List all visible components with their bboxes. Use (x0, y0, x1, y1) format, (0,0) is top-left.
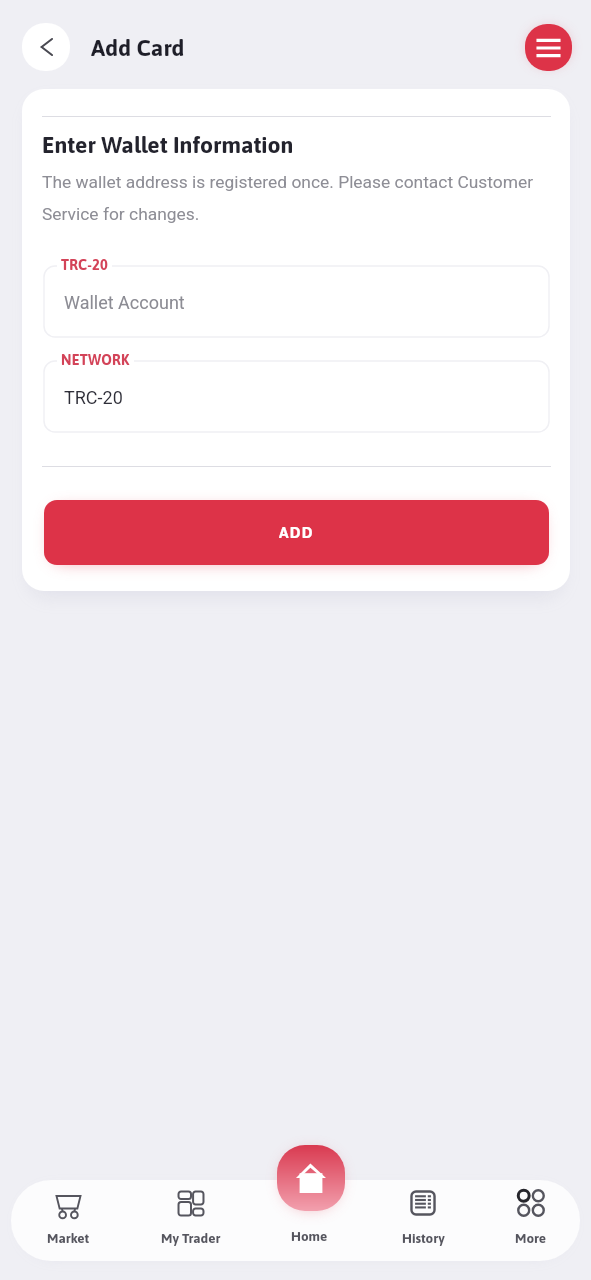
staticText: Add Card (91, 35, 185, 61)
button[interactable]: Menu (525, 24, 572, 71)
staticText: More (515, 1230, 547, 1245)
staticText: ADD (279, 524, 314, 542)
button[interactable]: Market (24, 1185, 112, 1251)
staticText: Home (291, 1228, 328, 1243)
button[interactable]: My Trader (147, 1185, 235, 1251)
staticText: History (402, 1230, 445, 1245)
staticText: TRC-20 (64, 387, 123, 408)
staticText: Wallet Account (64, 292, 185, 313)
button[interactable]: History (379, 1185, 467, 1251)
button[interactable]: Back (22, 23, 70, 71)
staticText: The wallet address is registered once. P… (42, 172, 544, 225)
staticText: My Trader (161, 1230, 221, 1245)
button[interactable]: Home (277, 1145, 345, 1211)
staticText: Market (47, 1230, 90, 1245)
button[interactable]: ADD (44, 500, 549, 565)
staticText: TRC-20 (61, 256, 108, 273)
staticText: NETWORK (61, 351, 130, 368)
staticText: Enter Wallet Information (42, 132, 294, 158)
button[interactable]: More (487, 1185, 575, 1251)
